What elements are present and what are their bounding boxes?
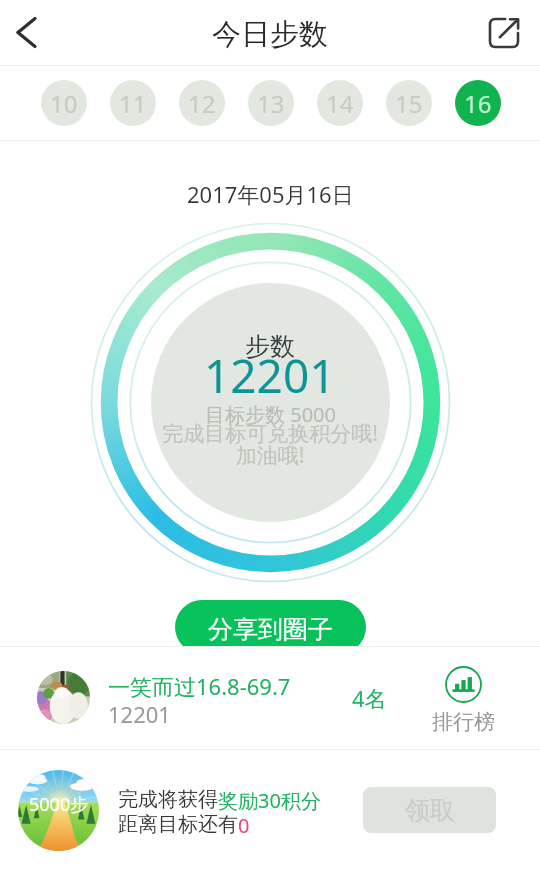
button[interactable]: 一笑而过16.8-69.7 [0,647,540,749]
staticText: 12201 [204,344,336,407]
staticText: 目标步数 5000 [205,401,336,428]
staticText: 2017年05月16日 [187,179,354,209]
button[interactable]: 分享到圈子 [175,600,366,646]
staticText: 一笑而过16.8-69.7 [108,671,291,701]
staticText: 排行榜 [432,709,495,735]
button[interactable]: 15 [386,80,432,126]
button[interactable]: 10 [41,80,87,126]
staticText: 4名 [352,683,387,713]
button[interactable]: 14 [317,80,363,126]
staticText: 距离目标还有 [118,812,238,837]
staticText: 0 [238,812,250,839]
staticText: 12201 [108,699,171,729]
staticText: 今日步数 [212,16,328,53]
staticText: 奖励30积分 [218,787,321,814]
staticText: 5000步 [29,792,89,817]
button[interactable]: 13 [248,80,294,126]
staticText: 步数 [245,331,295,362]
button[interactable]: 领取 [363,787,496,833]
staticText: 13 [257,87,285,120]
staticText: 15 [395,87,423,120]
staticText: 分享到圈子 [208,614,333,645]
button[interactable]: 16 [455,80,501,126]
button[interactable]: Share [478,7,530,59]
button[interactable]: 排行榜 [423,647,503,749]
button[interactable]: 11 [110,80,156,126]
staticText: 11 [119,87,147,120]
staticText: 14 [326,87,354,120]
staticText: 16 [464,87,492,120]
staticText: 10 [50,87,78,120]
button[interactable]: 12 [179,80,225,126]
staticText: 完成目标可兑换积分哦! 加油哦! [0,419,540,470]
staticText: 完成将获得 [118,787,218,812]
staticText: 领取 [405,795,455,826]
button[interactable]: Back [0,6,54,60]
staticText: 12 [188,87,216,120]
